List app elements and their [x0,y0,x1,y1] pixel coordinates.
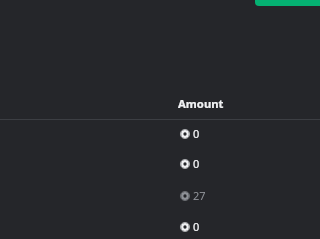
staticText: 0 [193,126,200,141]
button[interactable]: 0 [0,211,320,239]
staticText: 0 [193,156,200,171]
staticText: 0 [193,219,200,234]
staticText: 27 [193,188,206,203]
staticText: Amount [178,96,224,111]
button[interactable]: 0 [0,148,320,179]
button[interactable]: 27 [0,180,320,211]
button[interactable]: Selected tab [255,0,320,6]
button[interactable]: 0 [0,119,320,148]
